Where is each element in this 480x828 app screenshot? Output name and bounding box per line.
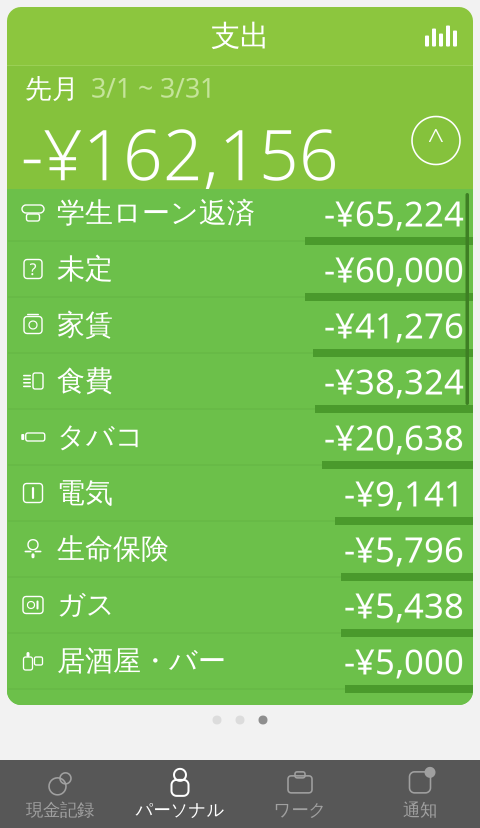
staticText: 電気 [57,476,113,510]
button[interactable]: ガス [7,581,473,637]
staticText: -¥5,438 [344,582,464,628]
staticText: -¥9,141 [344,470,464,516]
staticText: タバコ [57,420,144,454]
staticText: パーソナル [135,799,224,821]
button[interactable]: 家賃 [7,301,473,357]
button[interactable]: 食費 [7,357,473,413]
button[interactable]: 折りたたむ [412,90,473,164]
button[interactable]: タバコ [7,413,473,469]
button[interactable]: 生命保険 [7,525,473,581]
staticText: -¥5,000 [344,638,464,684]
staticText: 先月 [25,72,79,105]
staticText: ワーク [273,799,326,821]
staticText: 居酒屋・バー [57,644,226,678]
staticText: 家賃 [57,308,113,342]
button[interactable]: パーソナル [120,759,240,828]
staticText: 未定 [57,252,113,286]
staticText: -¥41,276 [324,302,464,348]
staticText: -¥65,224 [324,190,464,236]
button[interactable]: 居酒屋・バー [7,637,473,693]
staticText: -¥38,324 [324,358,464,404]
button[interactable]: 現金記録 [0,759,120,828]
staticText: 現金記録 [26,799,94,821]
button[interactable]: 通知 [360,759,480,828]
button[interactable]: 学生ローン返済 [7,189,473,245]
staticText: -¥5,796 [344,526,464,572]
button[interactable]: 電気 [7,469,473,525]
staticText: 支出 [211,18,269,54]
staticText: 生命保険 [57,532,169,566]
staticText: -¥162,156 [21,107,339,199]
staticText: -¥60,000 [324,246,464,292]
staticText: -¥20,638 [324,414,464,460]
staticText: ? [29,258,36,280]
staticText: 食費 [57,364,113,398]
button[interactable]: ? [7,245,473,301]
staticText: ガス [57,588,115,622]
staticText: 3/1 ~ 3/31 [91,70,215,105]
staticText: ^ [427,119,444,158]
staticText: 通知 [403,799,437,821]
staticText: 学生ローン返済 [57,196,255,230]
button[interactable]: ワーク [240,759,360,828]
button[interactable]: グラフ [409,12,473,60]
